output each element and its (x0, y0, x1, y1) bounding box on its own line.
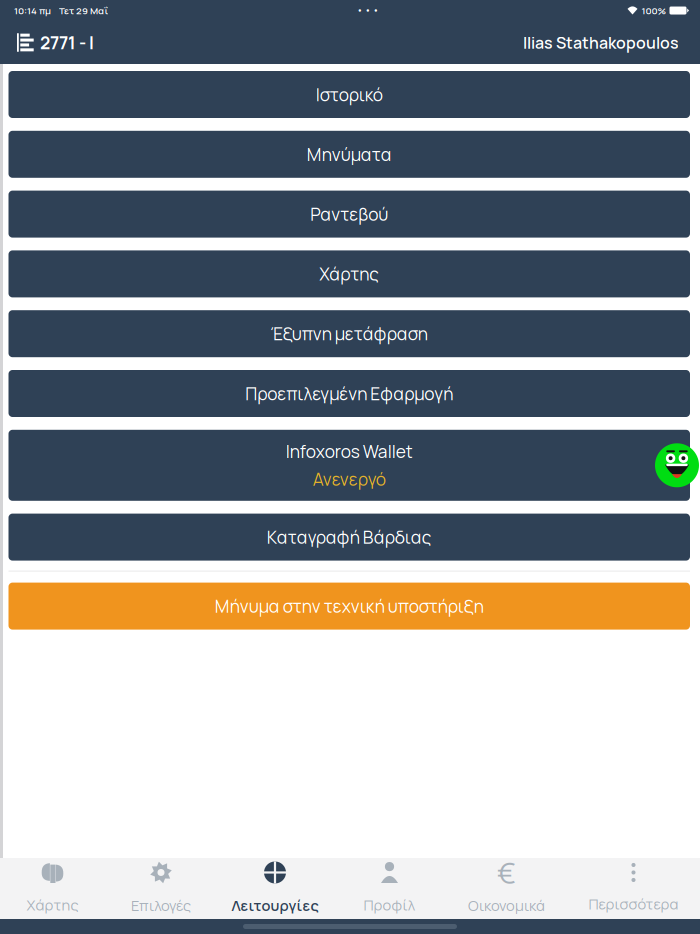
staticText: Μηνύματα (307, 142, 392, 166)
staticText: • • • (357, 5, 379, 16)
button[interactable]: Μήνυμα στην τεχνική υποστήριξη (8, 583, 690, 630)
button[interactable]: Προεπιλεγμένη Εφαρμογή (8, 370, 690, 417)
staticText: Ilias Stathakopoulos (523, 32, 679, 53)
staticText: Λειτουργίες (231, 895, 318, 915)
staticText: Περισσότερα (588, 894, 678, 914)
staticText: 10:14 πμ (14, 4, 51, 17)
staticText: Μήνυμα στην τεχνική υποστήριξη (215, 594, 484, 618)
button[interactable]: Καταγραφή Βάρδιας (8, 514, 690, 561)
button[interactable]: Επιλογές (105, 858, 217, 919)
button[interactable]: Ραντεβού (8, 191, 690, 238)
staticText: Ιστορικό (316, 83, 383, 106)
button[interactable]: Λειτουργίες (217, 858, 333, 919)
button[interactable]: Ιστορικό (8, 71, 690, 118)
staticText: Προφίλ (363, 895, 415, 915)
staticText: Infoxoros Wallet (286, 440, 413, 463)
staticText: Χάρτης (319, 262, 379, 286)
button[interactable]: Έξυπνη μετάφραση (8, 310, 690, 357)
staticText: Τετ 29 Μαΐ (59, 4, 108, 17)
staticText: Ραντεβού (310, 202, 388, 226)
staticText: Ανενεργό (313, 467, 386, 491)
staticText: Καταγραφή Βάρδιας (267, 525, 432, 549)
button[interactable]: Infoxoros Wallet (8, 430, 690, 501)
staticText: 2771 - I (40, 31, 94, 54)
button[interactable]: Προφίλ (333, 858, 446, 919)
button[interactable]: Χάρτης (8, 250, 690, 297)
staticText: 100% (641, 4, 666, 17)
button[interactable]: Μηνύματα (8, 131, 690, 178)
staticText: Χάρτης (26, 895, 78, 915)
button[interactable]: 2771 - I (17, 23, 94, 62)
staticText: Προεπιλεγμένη Εφαρμογή (245, 382, 453, 405)
staticText: Οικονομικά (468, 895, 545, 915)
button[interactable]: Ilias Stathakopoulos (523, 24, 679, 61)
button[interactable]: Περισσότερα (567, 858, 700, 919)
staticText: Επιλογές (131, 895, 191, 915)
button[interactable]: € (446, 858, 567, 919)
button[interactable]: Χάρτης (0, 858, 105, 919)
staticText: Έξυπνη μετάφραση (271, 322, 428, 346)
staticText: € (497, 852, 516, 892)
